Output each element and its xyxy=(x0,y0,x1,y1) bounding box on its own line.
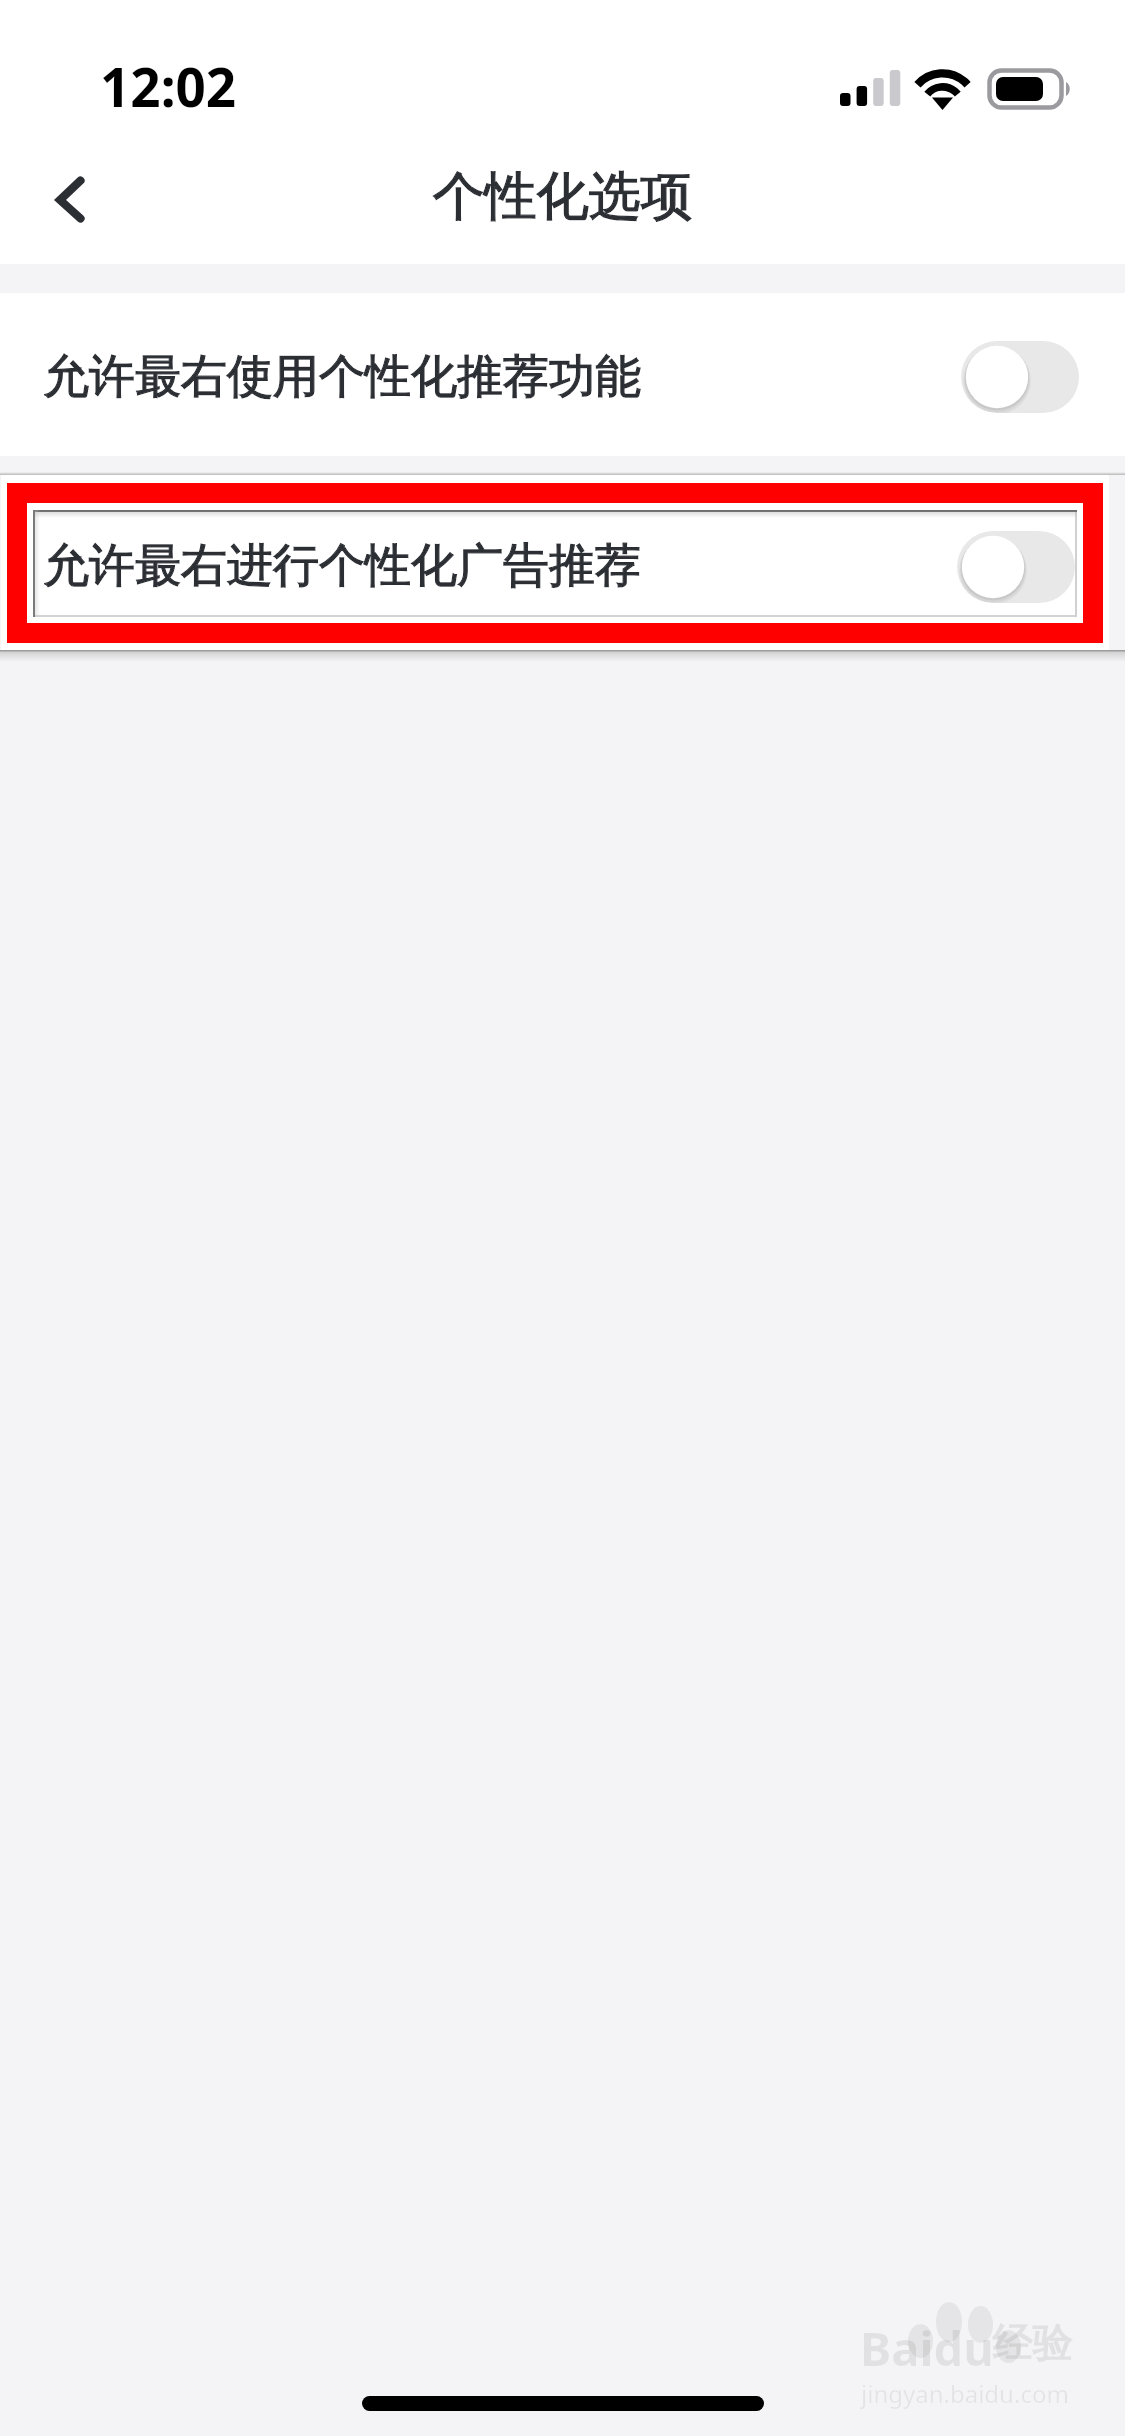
button[interactable]: 允许最右使用个性化推荐功能 xyxy=(0,293,1125,456)
staticText: 允许最右使用个性化推荐功能 xyxy=(43,348,641,406)
button[interactable]: 允许最右进行个性化广告推荐 xyxy=(33,510,1077,617)
staticText: Baidu xyxy=(860,2316,994,2380)
button[interactable]: Toggle switch xyxy=(961,341,1079,413)
staticText: 允许最右使用个性化推荐功能 xyxy=(43,348,641,406)
staticText: 经验 xyxy=(992,2318,1072,2368)
staticText: 允许最右进行个性化广告推荐 xyxy=(43,537,641,595)
staticText: 12:02 xyxy=(100,50,237,122)
button[interactable]: Back xyxy=(10,132,130,252)
staticText: 允许最右进行个性化广告推荐 xyxy=(43,537,641,595)
staticText: jingyan.baidu.com xyxy=(861,2377,1069,2410)
staticText: 个性化选项 xyxy=(0,164,1125,230)
button[interactable]: Toggle switch xyxy=(957,531,1075,603)
staticText: 个性化选项 xyxy=(0,164,1125,230)
